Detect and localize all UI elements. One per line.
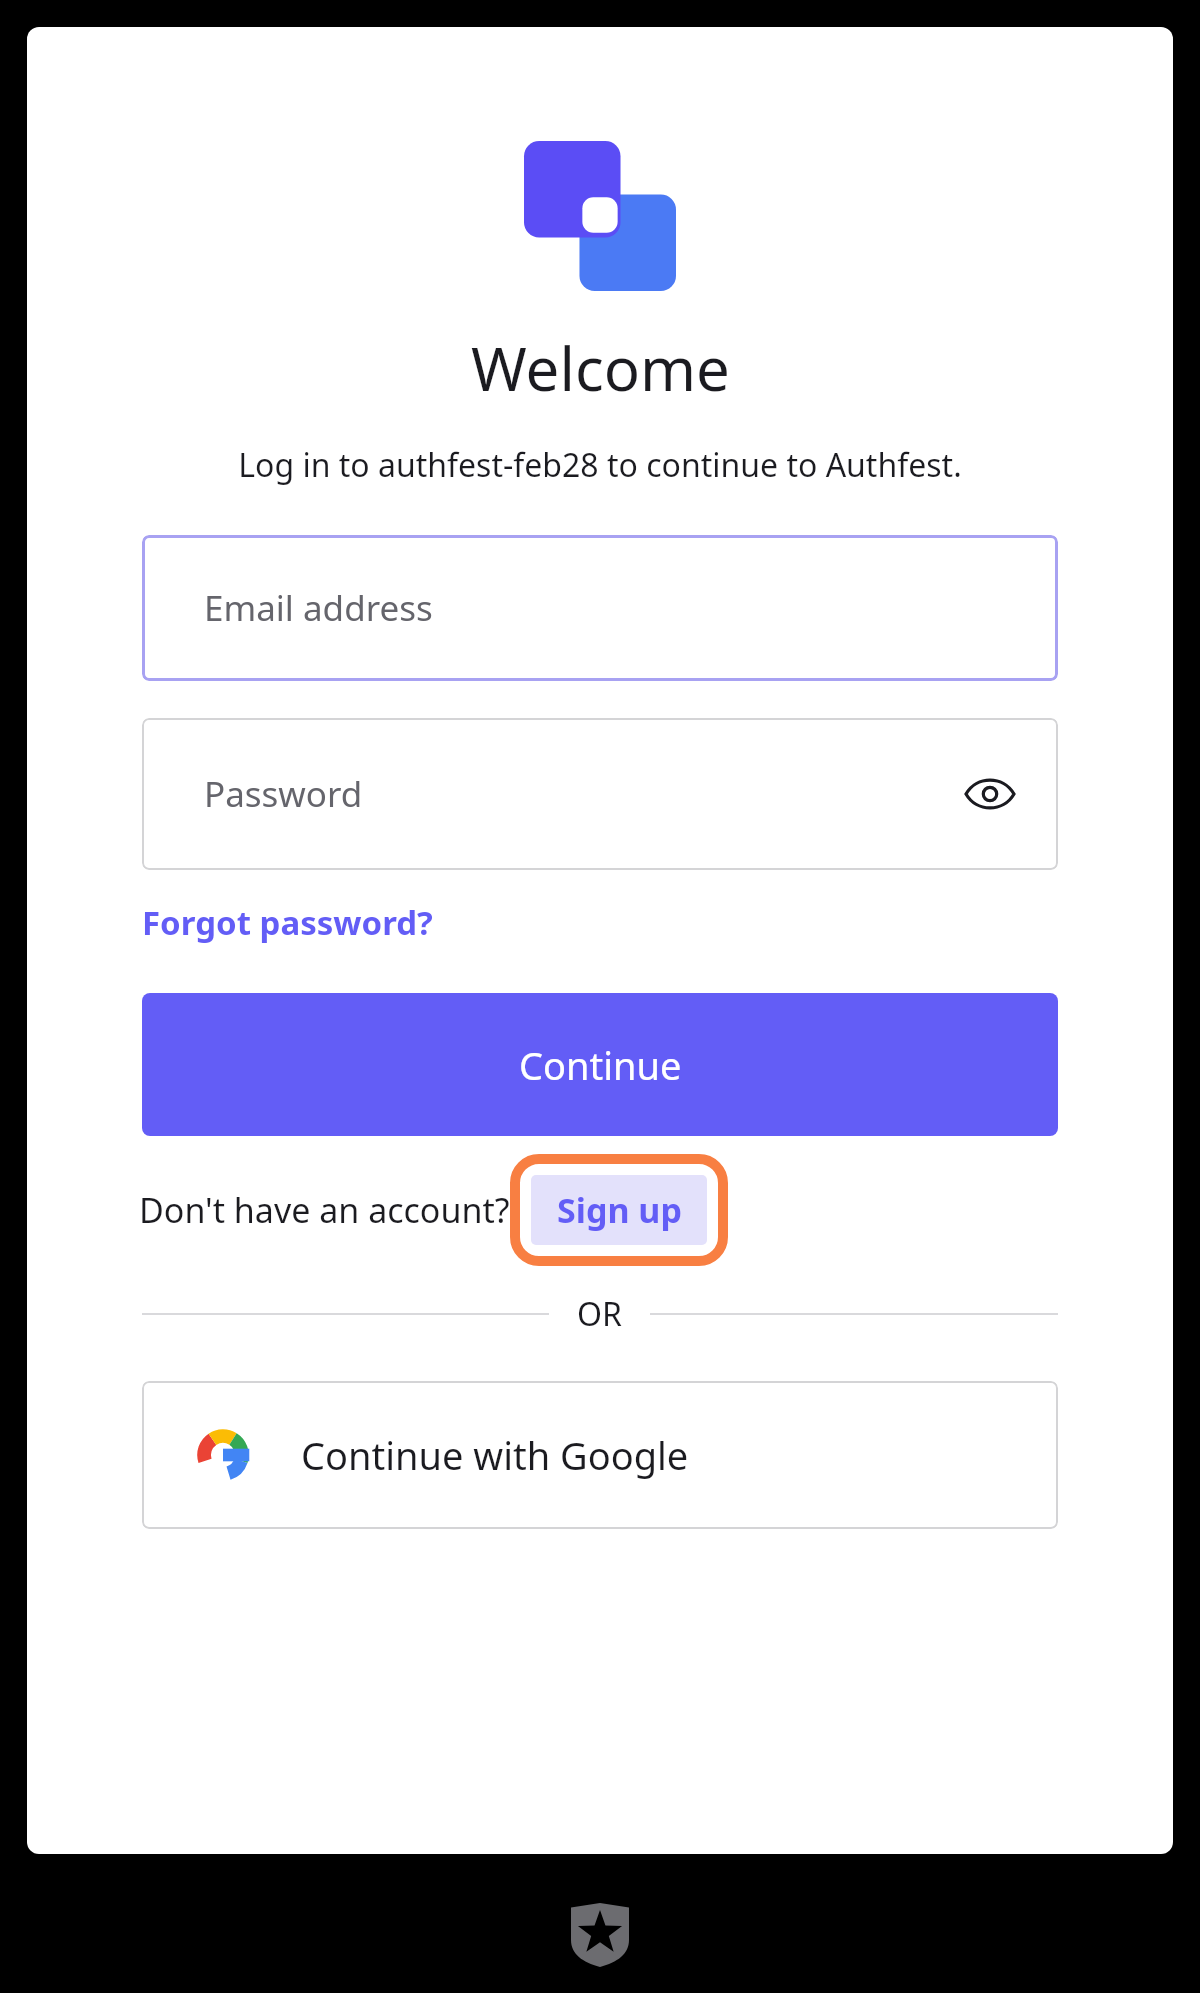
- staticText: Password: [204, 770, 363, 818]
- staticText: Continue: [519, 1039, 682, 1091]
- button[interactable]: Continue with Google: [142, 1381, 1058, 1529]
- button[interactable]: Sign up: [510, 1154, 728, 1266]
- staticText: Sign up: [557, 1187, 682, 1233]
- staticText: Don't have an account?: [139, 1187, 510, 1233]
- staticText: OR: [577, 1292, 622, 1336]
- staticText: Continue with Google: [301, 1429, 689, 1481]
- staticText: Welcome: [471, 327, 730, 409]
- button[interactable]: Forgot password?: [142, 900, 433, 945]
- button[interactable]: Email address: [142, 535, 1058, 681]
- button[interactable]: Show password: [957, 761, 1023, 827]
- staticText: Forgot password?: [142, 900, 433, 945]
- button[interactable]: Password: [142, 718, 1058, 870]
- button[interactable]: Continue: [142, 993, 1058, 1136]
- staticText: Email address: [204, 584, 433, 632]
- staticText: Log in to authfest-feb28 to continue to …: [238, 443, 962, 487]
